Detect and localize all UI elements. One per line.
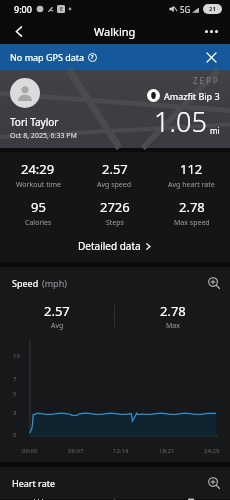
staticText: 3 bbox=[13, 409, 17, 417]
staticText: Avg bbox=[51, 321, 64, 331]
button[interactable]: Expand speed chart bbox=[204, 273, 224, 293]
staticText: 2.78 bbox=[160, 302, 186, 320]
staticText: Max bbox=[166, 321, 180, 331]
staticText: ? bbox=[91, 54, 94, 61]
staticText: Calories bbox=[25, 218, 52, 228]
staticText: Walking bbox=[94, 24, 136, 39]
staticText: Speed bbox=[12, 277, 39, 289]
staticText: 2.78 bbox=[179, 198, 205, 216]
staticText: Heart rate bbox=[12, 477, 56, 489]
staticText: 24:29 bbox=[204, 447, 220, 455]
staticText: 9:00 bbox=[14, 3, 32, 15]
staticText: 2.57 bbox=[102, 160, 128, 178]
staticText: 95 bbox=[31, 198, 46, 216]
button[interactable]: Help bbox=[88, 53, 97, 62]
staticText: 06:07 bbox=[68, 447, 84, 455]
staticText: 7 bbox=[13, 375, 17, 383]
staticText: 21 bbox=[209, 5, 216, 13]
staticText: Tori Taylor bbox=[10, 115, 59, 129]
staticText: (mph) bbox=[42, 277, 67, 289]
button[interactable]: More options bbox=[198, 18, 224, 44]
staticText: 5G bbox=[180, 4, 191, 15]
staticText: Max speed bbox=[174, 218, 210, 228]
staticText: Avg speed bbox=[97, 180, 132, 190]
staticText: 24:29 bbox=[21, 160, 55, 178]
button[interactable]: Home bbox=[76, 499, 153, 500]
staticText: 0 bbox=[13, 431, 17, 439]
staticText: mi bbox=[210, 125, 220, 136]
staticText: Steps bbox=[106, 218, 124, 228]
button[interactable]: Recent apps bbox=[0, 499, 76, 500]
staticText: Amazfit Bip 3 bbox=[164, 90, 220, 102]
button[interactable]: Detailed data bbox=[0, 236, 230, 256]
staticText: E bbox=[60, 6, 63, 13]
staticText: 10 bbox=[13, 352, 20, 360]
staticText: Workout time bbox=[16, 180, 61, 190]
staticText: No map GPS data bbox=[10, 51, 85, 63]
staticText: 2726 bbox=[100, 198, 130, 216]
staticText: 18:21 bbox=[159, 447, 175, 455]
staticText: Avg heart rate bbox=[168, 180, 215, 190]
staticText: 2.57 bbox=[44, 302, 70, 320]
button[interactable]: Back bbox=[153, 499, 230, 500]
staticText: 00:00 bbox=[22, 447, 38, 455]
staticText: ZEPP bbox=[193, 75, 220, 86]
staticText: 1.05 bbox=[154, 103, 207, 140]
staticText: 5 bbox=[13, 390, 17, 398]
button[interactable]: Close bbox=[202, 48, 220, 66]
staticText: Oct 8, 2025, 6:33 PM bbox=[10, 131, 77, 141]
button[interactable]: Expand heart rate chart bbox=[204, 473, 224, 493]
staticText: 12:14 bbox=[113, 447, 129, 455]
staticText: 112 bbox=[180, 160, 203, 178]
staticText: Detailed data bbox=[78, 239, 141, 253]
button[interactable]: Back bbox=[6, 18, 32, 44]
